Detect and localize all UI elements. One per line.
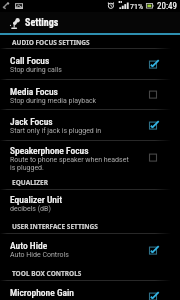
button[interactable]: Media Focus [0,80,180,109]
other: Disabled checkbox [149,152,160,163]
other: Disabled checkbox [149,89,160,100]
button[interactable]: Auto Hide [0,234,180,266]
button[interactable]: Jack Focus [0,110,180,140]
staticText: Stop during media playback [10,97,97,105]
staticText: Stop during calls [10,66,62,74]
staticText: Equalizer Unit [10,194,63,205]
other: App icon [9,16,21,30]
staticText: Auto Hide [10,240,48,251]
staticText: AUDIO FOCUS SETTINGS [12,38,90,47]
staticText: Auto Hide Controls [10,251,69,259]
staticText: Microphone Gain [10,287,74,298]
staticText: TOOL BOX CONTROLS [12,269,82,278]
other: Enabled checkbox [149,291,160,300]
staticText: decibels (dB) [10,205,51,213]
staticText: Route to phone speaker when headset is p… [10,156,134,172]
other: Enabled checkbox [149,59,160,70]
button[interactable]: Equalizer Unit [0,190,180,219]
staticText: Jack Focus [10,116,53,127]
button[interactable]: Call Focus [0,49,180,79]
button[interactable]: Microphone Gain [0,281,180,300]
staticText: 20:49 [157,1,177,12]
other: Enabled checkbox [149,120,160,131]
staticText: 71% [130,2,143,11]
button[interactable]: App icon [0,12,180,33]
other: Enabled checkbox [149,245,160,256]
staticText: Call Focus [10,55,50,66]
button[interactable]: Speakerphone Focus [0,141,180,175]
staticText: Start only if jack is plugged in [10,127,102,135]
staticText: Media Focus [10,86,58,97]
staticText: Speakerphone Focus [10,145,89,156]
staticText: USER INTERFACE SETTINGS [12,222,98,231]
staticText: EQUALIZER [12,178,48,187]
staticText: Settings [25,17,59,29]
